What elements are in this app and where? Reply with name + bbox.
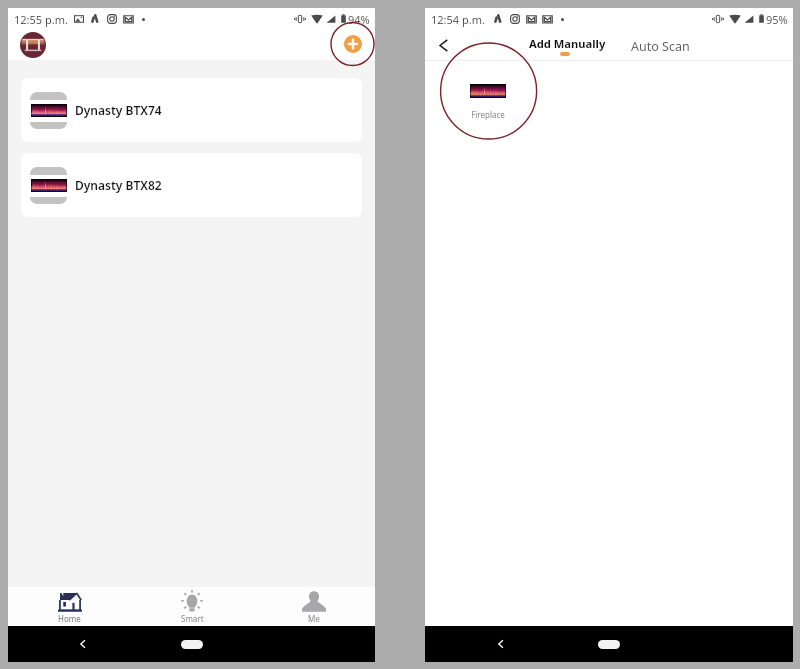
button[interactable]: Back (77, 638, 89, 650)
staticText: Dynasty BTX74 (75, 102, 162, 118)
staticText: Add Manually (529, 36, 606, 51)
button[interactable]: Dynasty BTX74 (21, 78, 362, 142)
staticText: Auto Scan (631, 38, 690, 55)
staticText: Home (58, 613, 81, 624)
button[interactable]: Profile (20, 32, 46, 58)
staticText: Dynasty BTX82 (75, 177, 162, 193)
button[interactable]: Back (495, 638, 507, 650)
button[interactable]: Auto Scan (631, 38, 690, 55)
staticText: Smart (181, 613, 204, 624)
staticText: 94% (348, 12, 370, 27)
button[interactable]: Dynasty BTX82 (21, 153, 362, 217)
button[interactable]: Me (253, 587, 375, 626)
staticText: 12:55 p.m. (14, 12, 68, 27)
staticText: 12:54 p.m. (431, 12, 485, 27)
button[interactable]: Home (181, 640, 203, 649)
staticText: Me (308, 613, 320, 624)
button[interactable]: Home (598, 640, 620, 649)
button[interactable]: Add Manually (529, 36, 606, 56)
button[interactable]: Back (439, 39, 448, 52)
button[interactable]: Smart (131, 587, 253, 626)
button[interactable]: Home (8, 587, 131, 626)
button[interactable]: Add device (344, 35, 362, 53)
staticText: Fireplace (471, 109, 505, 120)
staticText: 95% (766, 12, 788, 27)
button[interactable]: Fireplace (470, 84, 506, 120)
